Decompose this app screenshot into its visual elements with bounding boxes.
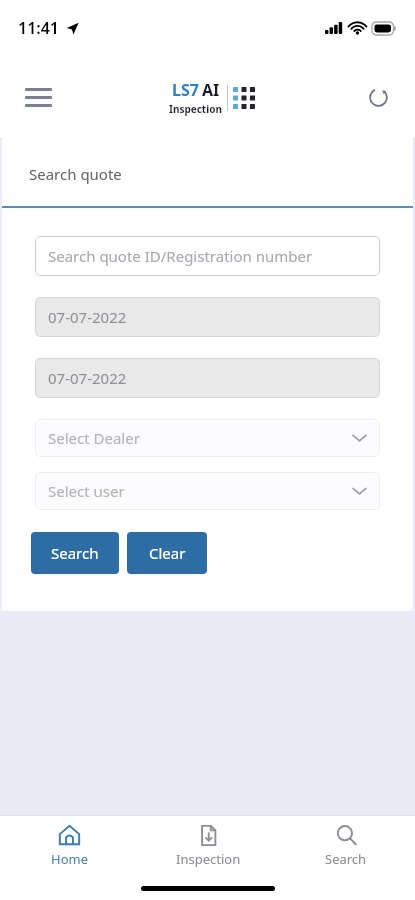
staticText: AI bbox=[202, 79, 220, 101]
button[interactable]: Home bbox=[0, 818, 139, 874]
staticText: Clear bbox=[149, 543, 186, 563]
button[interactable]: Search bbox=[31, 532, 119, 574]
staticText: Inspection bbox=[176, 850, 241, 868]
staticText: 07-07-2022 bbox=[48, 307, 127, 327]
staticText: Select user bbox=[48, 481, 125, 501]
staticText: Inspection bbox=[169, 102, 222, 116]
button[interactable]: Select user bbox=[35, 472, 380, 510]
staticText: Search quote ID/Registration number bbox=[48, 246, 313, 266]
button[interactable]: Search quote ID/Registration number bbox=[35, 236, 380, 276]
button[interactable]: 07-07-2022 bbox=[35, 358, 380, 398]
button[interactable]: Refresh bbox=[355, 74, 401, 120]
staticText: 11:41 bbox=[18, 17, 60, 39]
button[interactable]: LS7 bbox=[169, 79, 255, 116]
button[interactable]: Clear bbox=[127, 532, 207, 574]
button[interactable]: Select Dealer bbox=[35, 419, 380, 457]
button[interactable]: Menu bbox=[12, 71, 64, 123]
staticText: Home bbox=[51, 850, 88, 868]
staticText: Search bbox=[51, 543, 99, 563]
staticText: Search bbox=[325, 850, 367, 868]
button[interactable]: Search bbox=[277, 818, 415, 874]
button[interactable]: 07-07-2022 bbox=[35, 297, 380, 337]
button[interactable]: Inspection bbox=[139, 818, 277, 874]
staticText: LS7 bbox=[172, 79, 199, 101]
staticText: Search quote bbox=[29, 164, 122, 184]
staticText: 07-07-2022 bbox=[48, 368, 127, 388]
staticText: Select Dealer bbox=[48, 428, 140, 448]
